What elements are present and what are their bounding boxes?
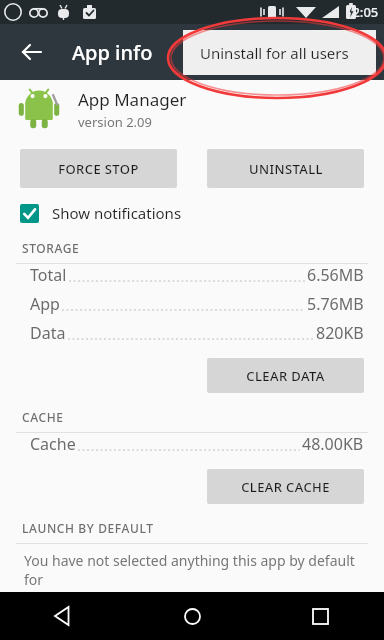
- staticText: CACHE: [22, 409, 64, 425]
- button[interactable]: UNINSTALL: [207, 149, 364, 188]
- staticText: Cache: [30, 433, 76, 455]
- button[interactable]: Data: [0, 322, 384, 351]
- staticText: Show notifications: [52, 203, 182, 223]
- button[interactable]: CLEAR CACHE: [207, 469, 364, 504]
- button[interactable]: App: [0, 293, 384, 322]
- staticText: CLEAR DATA: [246, 367, 325, 385]
- staticText: 6.56MB: [307, 264, 364, 286]
- staticText: App Manager: [78, 88, 187, 111]
- staticText: 820KB: [316, 322, 364, 344]
- staticText: App info: [72, 39, 153, 66]
- button[interactable]: Uninstall for all users: [183, 30, 376, 75]
- button[interactable]: CLEAR DATA: [207, 358, 364, 393]
- staticText: 5.76MB: [307, 293, 364, 315]
- staticText: Total: [30, 264, 67, 286]
- staticText: LAUNCH BY DEFAULT: [22, 520, 154, 536]
- staticText: CLEAR CACHE: [241, 478, 330, 496]
- staticText: 48.00KB: [302, 433, 364, 455]
- staticText: Uninstall for all users: [200, 43, 349, 63]
- staticText: 12:05: [345, 3, 379, 21]
- staticText: version 2.09: [78, 113, 152, 131]
- staticText: App: [30, 293, 60, 315]
- staticText: STORAGE: [22, 240, 80, 256]
- staticText: FORCE STOP: [58, 160, 139, 178]
- staticText: Data: [30, 322, 66, 344]
- staticText: You have not selected anything this app …: [24, 551, 368, 589]
- button[interactable]: Cache: [0, 433, 384, 462]
- staticText: UNINSTALL: [249, 160, 323, 178]
- button[interactable]: FORCE STOP: [20, 149, 177, 188]
- button[interactable]: Home: [168, 592, 216, 640]
- button[interactable]: Recent apps: [296, 592, 344, 640]
- button[interactable]: Back: [40, 592, 88, 640]
- button[interactable]: Show notifications: [20, 203, 368, 223]
- button[interactable]: Total: [0, 264, 384, 293]
- button[interactable]: Back: [8, 28, 56, 76]
